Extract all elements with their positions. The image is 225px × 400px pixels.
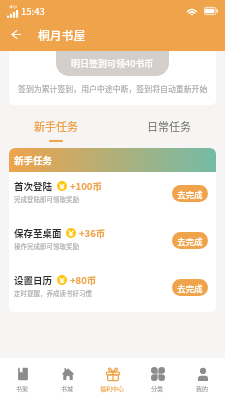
staticText: +100币	[70, 179, 102, 193]
staticText: 我的	[196, 384, 209, 393]
button[interactable]: 去完成	[172, 279, 208, 296]
button[interactable]: 我的	[180, 358, 225, 400]
staticText: +80币	[70, 273, 97, 287]
button[interactable]: 日常任务	[112, 112, 225, 144]
button[interactable]: 分类	[135, 358, 180, 400]
staticText: 去完成	[177, 235, 203, 247]
staticText: 去完成	[177, 188, 203, 200]
staticText: 设置日历	[14, 273, 53, 287]
staticText: 新手任务	[34, 118, 78, 134]
staticText: 桐月书屋	[38, 26, 86, 43]
button[interactable]: 去完成	[172, 232, 208, 249]
button[interactable]: 书架	[0, 358, 45, 400]
staticText: 分类	[151, 384, 164, 393]
staticText: 福利中心	[100, 384, 125, 393]
staticText: 明日签到可领40书币	[71, 57, 154, 70]
staticText: 新手任务	[14, 153, 53, 167]
staticText: 日常任务	[147, 118, 191, 134]
staticText: 签到为累计签到，用户中途中断，签到将自动重新开始	[18, 83, 208, 94]
button[interactable]: 福利中心	[90, 358, 135, 400]
button[interactable]: 新手任务	[0, 112, 112, 144]
staticText: 完成登陆即可领取奖励	[14, 194, 79, 203]
staticText: 书架	[16, 384, 29, 393]
button[interactable]: Back	[5, 24, 26, 45]
staticText: 去完成	[177, 282, 203, 294]
staticText: 15:43	[21, 4, 45, 18]
staticText: 操作完成即可领取奖励	[14, 241, 79, 250]
staticText: 首次登陆	[14, 179, 53, 193]
staticText: +36币	[79, 226, 106, 240]
button[interactable]: 去完成	[172, 185, 208, 202]
button[interactable]: 明日签到可领40书币	[56, 51, 169, 76]
staticText: 保存至桌面	[14, 226, 62, 240]
staticText: 书城	[61, 384, 74, 393]
button[interactable]: 书城	[45, 358, 90, 400]
staticText: 定时提醒，养成读书好习惯	[14, 288, 92, 297]
